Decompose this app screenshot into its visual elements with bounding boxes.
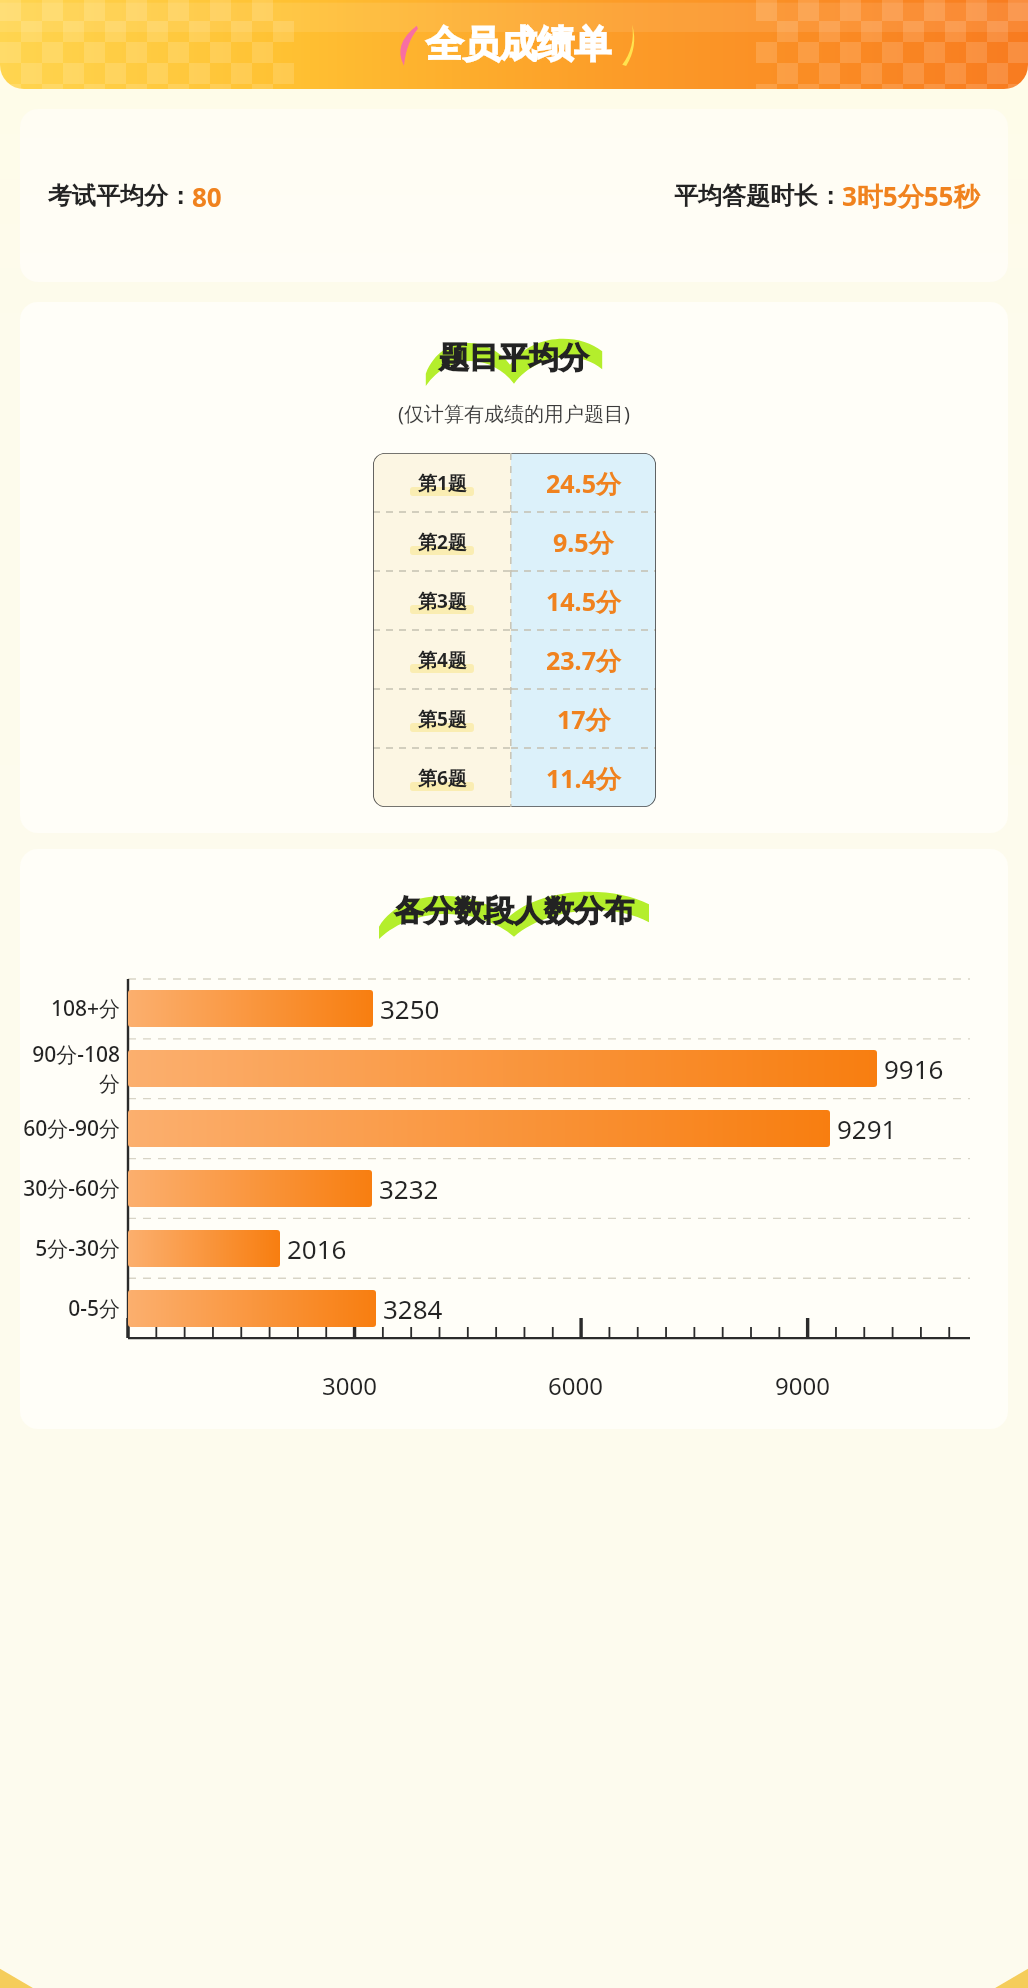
staticText: 9000 (775, 1369, 830, 1399)
button[interactable]: 考试平均分： (20, 109, 1008, 282)
staticText: 3000 (322, 1369, 377, 1399)
staticText: 14.5分 (546, 584, 621, 618)
staticText: 0-5分 (68, 1294, 120, 1323)
staticText: 第3题 (418, 588, 467, 614)
button[interactable]: Score distribution bar chart (20, 979, 1008, 1399)
staticText: 6000 (548, 1369, 603, 1399)
staticText: 23.7分 (546, 643, 621, 677)
staticText: 第4题 (418, 647, 467, 673)
button[interactable]: 第1题 (373, 453, 656, 807)
staticText: 第5题 (418, 706, 467, 732)
staticText: 2016 (287, 1231, 347, 1266)
staticText: 9916 (884, 1051, 944, 1086)
staticText: 考试平均分： (48, 181, 192, 211)
staticText: 60分-90分 (23, 1114, 120, 1143)
staticText: 17分 (557, 702, 611, 736)
staticText: 第1题 (418, 470, 467, 496)
staticText: 9.5分 (553, 525, 614, 559)
staticText: 全员成绩单 (426, 21, 611, 68)
staticText: 3284 (383, 1291, 443, 1326)
staticText: 108+分 (50, 994, 120, 1023)
staticText: 3232 (379, 1171, 439, 1206)
staticText: 30分-60分 (23, 1174, 120, 1203)
staticText: 80 (192, 179, 222, 214)
staticText: 90分-108分 (20, 1040, 120, 1097)
staticText: 第6题 (418, 765, 467, 791)
staticText: 9291 (837, 1111, 897, 1146)
staticText: 5分-30分 (35, 1234, 120, 1263)
staticText: (仅计算有成绩的用户题目) (398, 400, 630, 427)
staticText: 24.5分 (546, 466, 621, 500)
staticText: 题目平均分 (439, 339, 589, 377)
staticText: 3时5分55秒 (842, 178, 980, 214)
staticText: 第2题 (418, 529, 467, 555)
staticText: 各分数段人数分布 (394, 892, 634, 930)
staticText: 平均答题时长： (674, 181, 842, 211)
staticText: 3250 (380, 991, 440, 1026)
staticText: 11.4分 (546, 761, 621, 795)
